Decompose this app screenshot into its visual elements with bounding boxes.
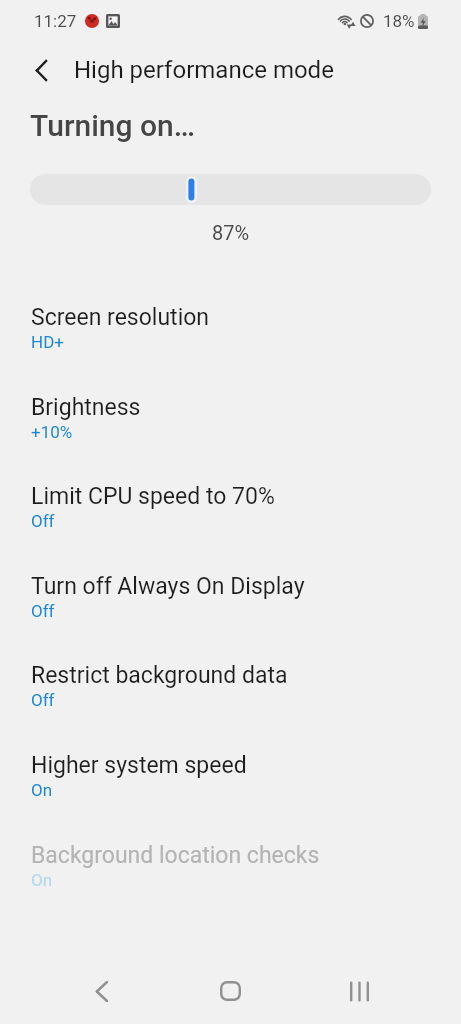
staticText: Screen resolution (31, 304, 210, 331)
button[interactable]: Turn off Always On Display (0, 573, 461, 643)
staticText: 11:27 (34, 11, 77, 31)
button[interactable]: Home (185, 960, 276, 1022)
staticText: 87% (0, 221, 461, 244)
button[interactable]: Navigate up (18, 47, 64, 93)
button[interactable]: Brightness (0, 394, 461, 464)
button[interactable]: Limit CPU speed to 70% (0, 483, 461, 553)
staticText: On (31, 780, 53, 800)
staticText: HD+ (31, 332, 64, 352)
staticText: On (31, 870, 53, 890)
staticText: +10% (31, 422, 73, 442)
staticText: High performance mode (74, 56, 334, 84)
staticText: Limit CPU speed to 70% (31, 483, 275, 510)
staticText: Off (31, 690, 55, 710)
button[interactable]: Back (56, 960, 147, 1022)
staticText: Brightness (31, 394, 141, 421)
staticText: Off (31, 601, 55, 621)
staticText: 18% (383, 11, 415, 31)
button[interactable]: Screen resolution (0, 304, 461, 374)
staticText: Turn off Always On Display (31, 573, 305, 600)
button[interactable]: Higher system speed (0, 752, 461, 822)
button[interactable]: Restrict background data (0, 662, 461, 732)
button[interactable]: Background location checks (0, 842, 461, 912)
staticText: Turning on… (30, 108, 195, 143)
staticText: Restrict background data (31, 662, 288, 689)
staticText: Higher system speed (31, 752, 247, 779)
staticText: Background location checks (31, 842, 320, 869)
button[interactable]: Recent apps (314, 960, 405, 1022)
staticText: Off (31, 511, 55, 531)
